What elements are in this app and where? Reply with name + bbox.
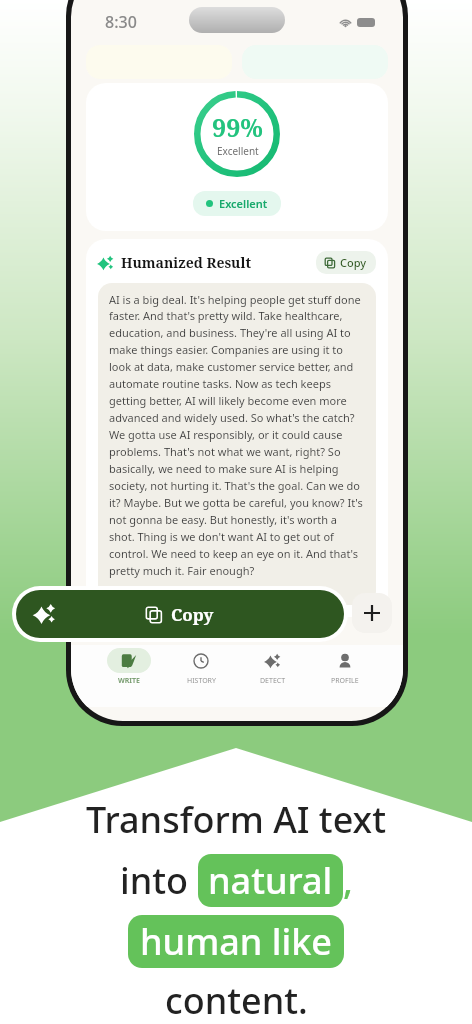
button[interactable]: HISTORY — [173, 645, 229, 689]
staticText: , — [343, 856, 353, 905]
staticText: content. — [165, 976, 308, 1024]
button[interactable]: DETECT — [245, 645, 301, 689]
staticText: HISTORY — [187, 676, 216, 686]
staticText: Humanized Result — [121, 253, 252, 272]
button[interactable]: Excellent — [193, 191, 281, 216]
button[interactable]: WRITE — [101, 645, 157, 689]
staticText: Copy — [171, 603, 214, 626]
button[interactable]: Copy — [316, 251, 376, 274]
staticText: PROFILE — [331, 676, 359, 686]
button[interactable]: Add — [352, 593, 392, 633]
staticText: into — [120, 856, 198, 905]
staticText: DETECT — [260, 676, 286, 686]
staticText: Excellent — [219, 196, 268, 211]
staticText: Copy — [340, 255, 367, 270]
staticText: Transform AI text — [86, 795, 386, 844]
staticText: human like — [140, 917, 332, 966]
staticText: AI is a big deal. It's helping people ge… — [109, 292, 365, 578]
staticText: 99% — [212, 110, 263, 144]
staticText: natural — [208, 856, 333, 905]
staticText: 8:30 — [105, 11, 137, 33]
staticText: WRITE — [118, 676, 141, 686]
button[interactable]: PROFILE — [317, 645, 373, 689]
button[interactable]: Copy — [16, 590, 344, 638]
staticText: Excellent — [217, 144, 259, 158]
